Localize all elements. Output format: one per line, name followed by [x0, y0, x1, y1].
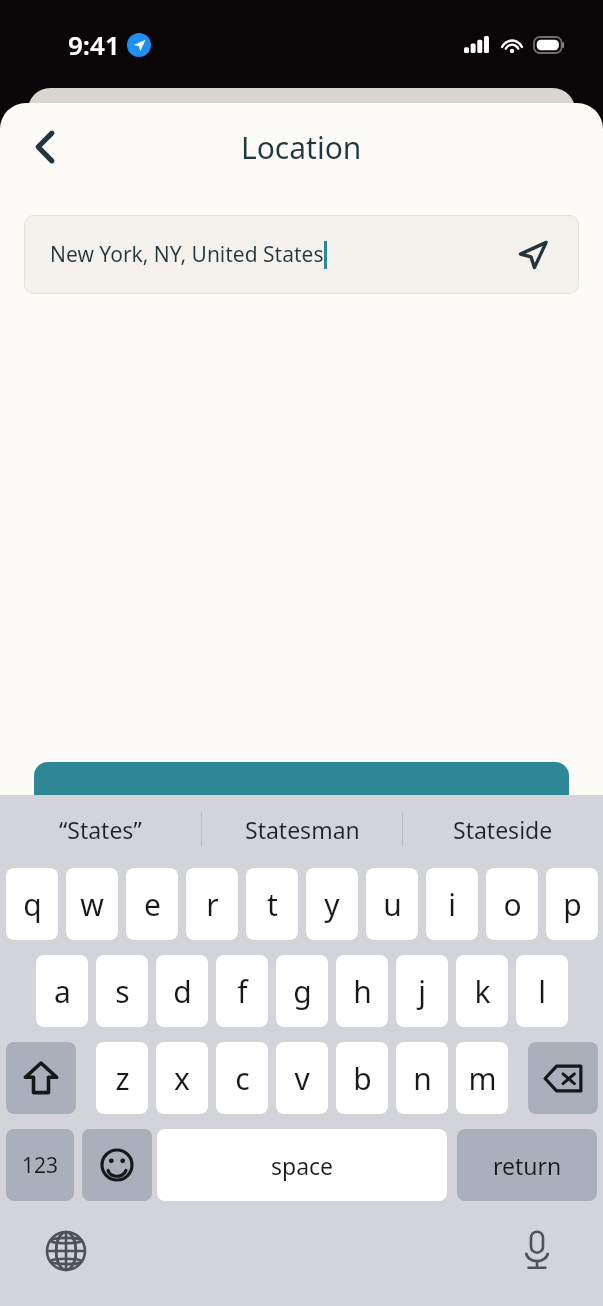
staticText: n [413, 1058, 432, 1099]
button[interactable]: q [6, 868, 58, 940]
staticText: a [54, 971, 71, 1012]
button[interactable]: Delete [528, 1042, 598, 1114]
button[interactable]: n [396, 1042, 448, 1114]
staticText: b [353, 1058, 372, 1099]
staticText: x [174, 1058, 190, 1099]
staticText: t [267, 884, 278, 925]
staticText: 9:41 [68, 27, 120, 62]
button[interactable]: return [457, 1129, 597, 1201]
button[interactable]: x [156, 1042, 208, 1114]
staticText: m [468, 1058, 497, 1099]
staticText: g [293, 971, 312, 1012]
button[interactable]: r [186, 868, 238, 940]
button[interactable]: Use current location [513, 235, 553, 275]
button[interactable]: Change keyboard [38, 1223, 94, 1279]
button[interactable]: Update [34, 762, 569, 862]
staticText: z [115, 1058, 130, 1099]
staticText: p [563, 884, 582, 925]
button[interactable]: g [276, 955, 328, 1027]
staticText: i [448, 884, 456, 925]
button[interactable]: a [36, 955, 88, 1027]
staticText: u [383, 884, 402, 925]
button[interactable]: Emoji [82, 1129, 152, 1201]
button[interactable]: c [216, 1042, 268, 1114]
button[interactable]: Shift [6, 1042, 76, 1114]
button[interactable]: New York, NY, United States [24, 215, 579, 294]
staticText: o [503, 884, 522, 925]
staticText: s [115, 971, 130, 1012]
staticText: q [23, 884, 42, 925]
button[interactable]: d [156, 955, 208, 1027]
button[interactable]: m [456, 1042, 508, 1114]
button[interactable]: w [66, 868, 118, 940]
button[interactable]: o [486, 868, 538, 940]
button[interactable]: “States” [0, 795, 201, 863]
button[interactable]: Back [20, 122, 70, 172]
staticText: w [80, 884, 104, 925]
staticText: k [474, 971, 491, 1012]
button[interactable]: k [456, 955, 508, 1027]
button[interactable]: j [396, 955, 448, 1027]
button[interactable]: t [246, 868, 298, 940]
staticText: r [206, 884, 219, 925]
button[interactable]: p [546, 868, 598, 940]
button[interactable]: y [306, 868, 358, 940]
button[interactable]: z [96, 1042, 148, 1114]
staticText: f [237, 971, 248, 1012]
staticText: c [235, 1058, 250, 1099]
staticText: 123 [22, 1151, 59, 1180]
staticText: j [418, 971, 426, 1012]
button[interactable]: f [216, 955, 268, 1027]
staticText: Update [256, 792, 348, 827]
button[interactable]: Dictate [509, 1223, 565, 1279]
button[interactable]: l [516, 955, 568, 1027]
button[interactable]: s [96, 955, 148, 1027]
button[interactable]: v [276, 1042, 328, 1114]
staticText: “States” [59, 814, 142, 845]
staticText: space [271, 1150, 334, 1181]
button[interactable]: e [126, 868, 178, 940]
button[interactable]: h [336, 955, 388, 1027]
staticText: return [493, 1150, 562, 1181]
staticText: e [144, 884, 161, 925]
button[interactable]: 123 [6, 1129, 74, 1201]
button[interactable]: Stateside [403, 795, 603, 863]
staticText: v [294, 1058, 310, 1099]
staticText: Location [241, 127, 362, 168]
button[interactable]: space [157, 1129, 447, 1201]
staticText: y [324, 884, 340, 925]
staticText: Statesman [245, 814, 360, 845]
staticText: New York, NY, United States [50, 240, 324, 269]
staticText: Stateside [453, 814, 553, 845]
button[interactable]: b [336, 1042, 388, 1114]
staticText: d [173, 971, 192, 1012]
button[interactable]: Statesman [202, 795, 402, 863]
staticText: l [538, 971, 546, 1012]
button[interactable]: i [426, 868, 478, 940]
button[interactable]: u [366, 868, 418, 940]
staticText: h [353, 971, 372, 1012]
